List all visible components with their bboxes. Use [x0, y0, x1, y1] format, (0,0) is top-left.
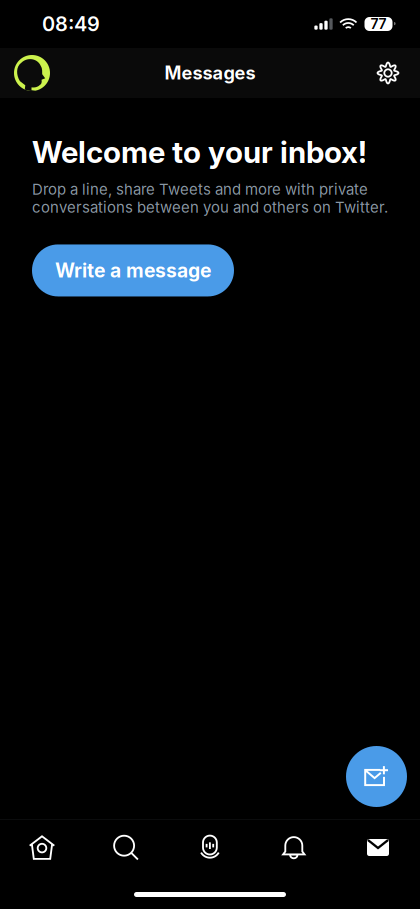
button[interactable]: Write a message	[32, 244, 234, 296]
staticText: Messages	[164, 62, 255, 84]
button[interactable]: Search	[84, 819, 168, 875]
staticText: Write a message	[55, 259, 211, 282]
button[interactable]: Settings	[364, 49, 412, 97]
button[interactable]: Notifications	[252, 819, 336, 875]
button[interactable]: Profile	[8, 49, 56, 97]
button[interactable]: Spaces	[168, 819, 252, 875]
button[interactable]: Messages	[336, 819, 420, 875]
staticText: Drop a line, share Tweets and more with …	[32, 180, 388, 216]
staticText: 08:49	[42, 12, 100, 36]
staticText: 77	[370, 15, 386, 32]
button[interactable]: Home	[0, 819, 84, 875]
staticText: Welcome to your inbox!	[32, 134, 367, 170]
button[interactable]: New message	[346, 746, 407, 807]
